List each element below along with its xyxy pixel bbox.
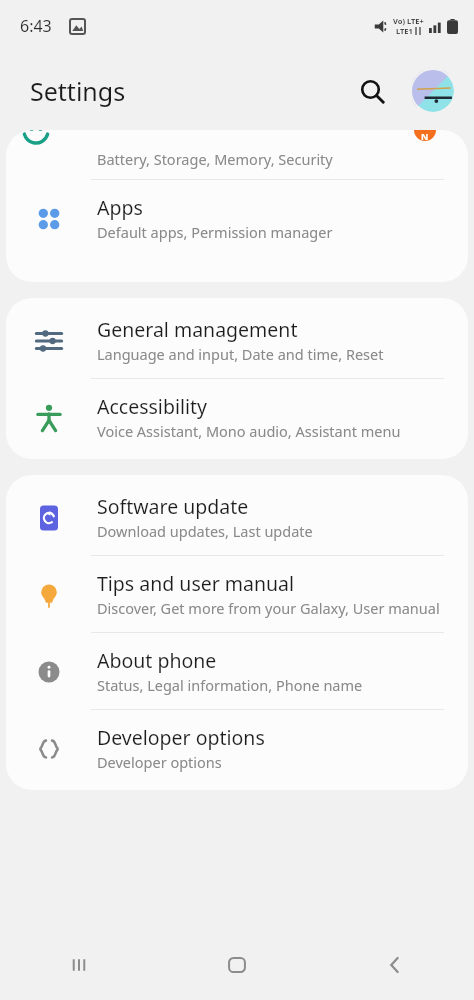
button[interactable]: Developer options [6, 710, 468, 786]
staticText: General management [97, 316, 298, 343]
staticText: Status, Legal information, Phone name [97, 675, 363, 695]
staticText: Voice Assistant, Mono audio, Assistant m… [97, 421, 401, 441]
button[interactable]: Software update [6, 479, 468, 555]
staticText: Settings [30, 74, 126, 108]
button[interactable]: Home [158, 930, 316, 1000]
button[interactable]: Battery, Storage, Memory, Security [6, 130, 468, 179]
button[interactable]: General management [6, 302, 468, 378]
staticText: Vo) [393, 16, 405, 26]
staticText: 6:43 [20, 15, 52, 37]
staticText: Tips and user manual [97, 570, 295, 597]
staticText: Discover, Get more from your Galaxy, Use… [97, 598, 440, 618]
button[interactable]: Tips and user manual [6, 556, 468, 632]
staticText: N [421, 130, 429, 142]
button[interactable]: Apps [6, 180, 468, 256]
button[interactable]: Recents [0, 930, 158, 1000]
button[interactable]: Account [410, 68, 456, 114]
staticText: Developer options [97, 724, 265, 751]
staticText: LTE1 [396, 26, 413, 36]
button[interactable]: About phone [6, 633, 468, 709]
staticText: About phone [97, 647, 217, 674]
button[interactable]: Accessibility [6, 379, 468, 455]
staticText: Developer options [97, 752, 222, 772]
staticText: Software update [97, 493, 249, 520]
staticText: Default apps, Permission manager [97, 222, 333, 242]
staticText: Download updates, Last update [97, 521, 313, 541]
button[interactable]: Search [350, 69, 394, 113]
staticText: Battery, Storage, Memory, Security [97, 149, 333, 169]
button[interactable]: Back [316, 930, 474, 1000]
staticText: Language and input, Date and time, Reset [97, 344, 384, 364]
staticText: LTE+ [407, 16, 424, 26]
staticText: Apps [97, 194, 143, 221]
staticText: Accessibility [97, 393, 207, 420]
